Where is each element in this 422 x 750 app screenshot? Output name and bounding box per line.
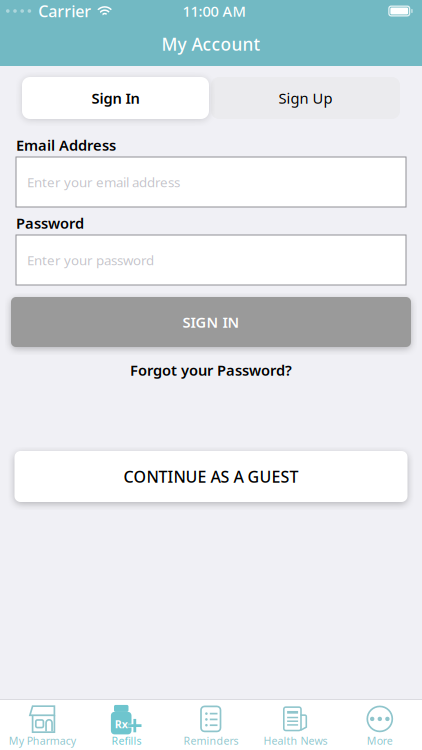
- button[interactable]: Sign In: [22, 77, 209, 119]
- staticText: More: [367, 733, 393, 748]
- staticText: Refills: [112, 733, 142, 748]
- button[interactable]: Sign Up: [211, 77, 400, 119]
- staticText: CONTINUE AS A GUEST: [123, 466, 298, 487]
- button[interactable]: Forgot your Password?: [81, 358, 341, 382]
- staticText: Reminders: [183, 733, 238, 748]
- staticText: Sign In: [91, 88, 139, 108]
- button[interactable]: More: [338, 699, 422, 750]
- staticText: Rx: [115, 717, 128, 731]
- staticText: 11:00 AM: [182, 1, 245, 21]
- button[interactable]: Enter your password: [16, 235, 406, 285]
- staticText: My Account: [161, 32, 260, 55]
- staticText: My Pharmacy: [9, 733, 76, 748]
- button[interactable]: Rx: [84, 699, 169, 750]
- staticText: Email Address: [16, 135, 116, 155]
- button[interactable]: Reminders: [169, 699, 253, 750]
- staticText: Health News: [263, 733, 327, 748]
- button[interactable]: Health News: [253, 699, 338, 750]
- button[interactable]: My Pharmacy: [0, 699, 84, 750]
- staticText: Password: [16, 213, 84, 233]
- staticText: Enter your password: [27, 251, 154, 269]
- staticText: Carrier: [38, 0, 91, 22]
- staticText: Enter your email address: [27, 173, 180, 191]
- staticText: Sign Up: [278, 88, 332, 108]
- button[interactable]: CONTINUE AS A GUEST: [14, 451, 407, 502]
- button[interactable]: Enter your email address: [16, 157, 406, 207]
- staticText: Forgot your Password?: [130, 360, 292, 380]
- staticText: SIGN IN: [182, 312, 239, 332]
- button[interactable]: SIGN IN: [11, 297, 411, 347]
